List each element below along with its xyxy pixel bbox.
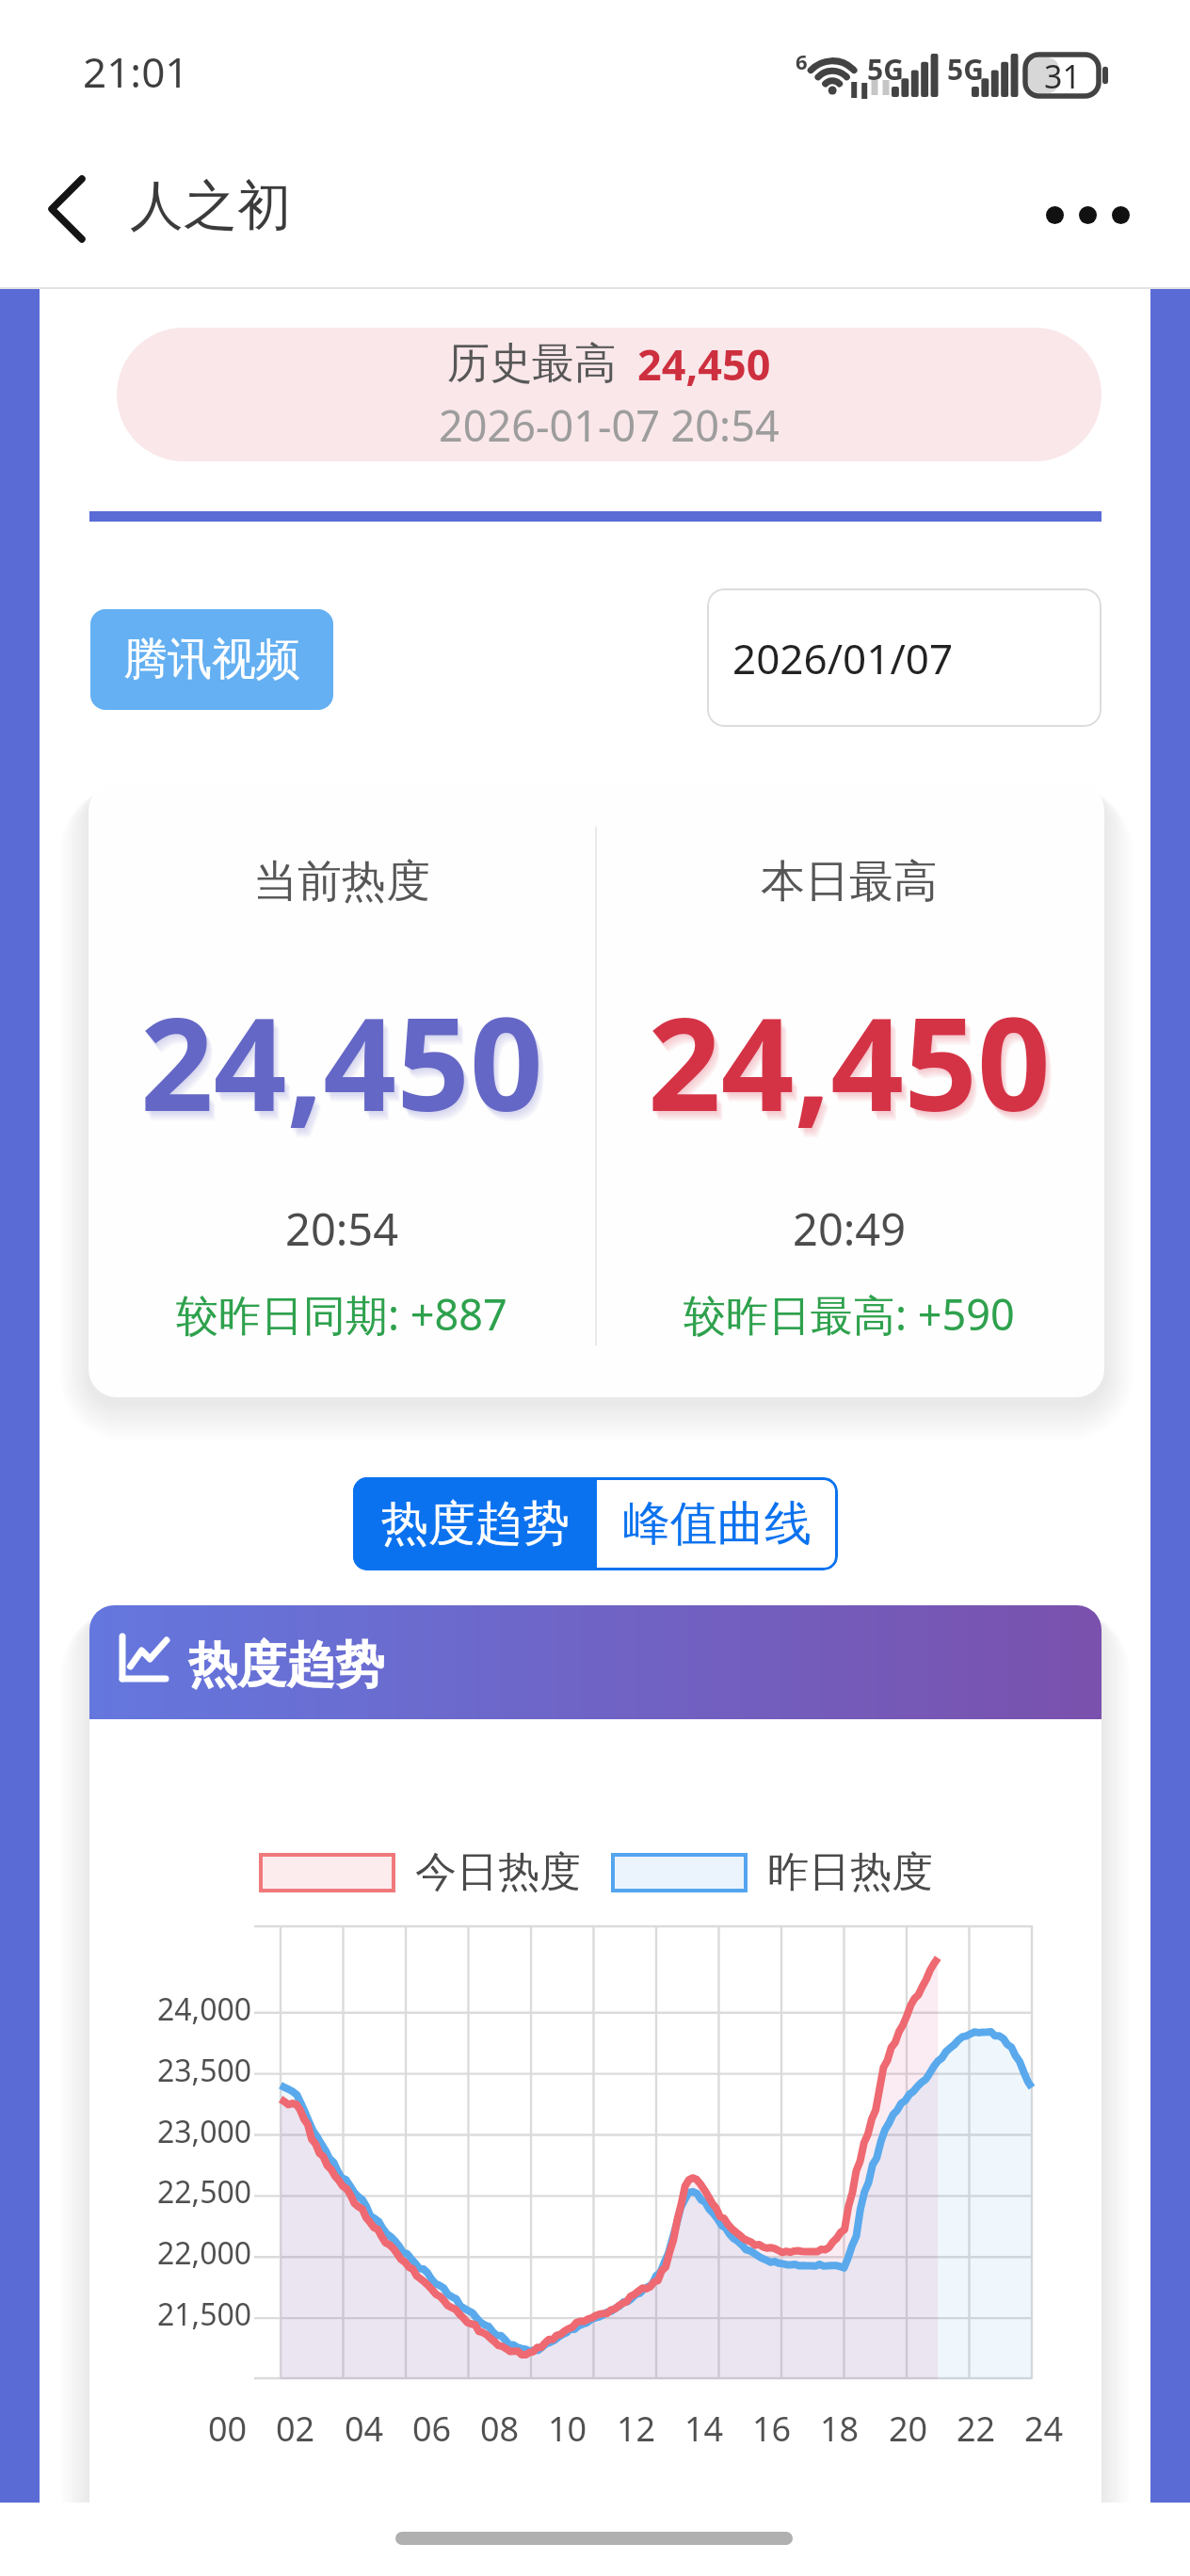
staticText: 23,500 (157, 2050, 252, 2091)
staticText: 06 (412, 2406, 452, 2452)
staticText: 较昨日同期: +887 (176, 1285, 507, 1343)
staticText: 24,450 (141, 976, 544, 1151)
staticText: 腾讯视频 (123, 632, 300, 687)
staticText: 24,450 (142, 978, 545, 1152)
staticText: 18 (820, 2406, 860, 2452)
staticText: 人之初 (130, 172, 291, 240)
staticText: 当前热度 (253, 854, 430, 910)
button[interactable]: Back (17, 159, 116, 258)
staticText: 2026-01-07 20:54 (439, 396, 780, 454)
staticText: 5G (867, 50, 904, 89)
staticText: 24,450 (649, 976, 1052, 1151)
staticText: 24,450 (650, 978, 1053, 1152)
staticText: 00 (208, 2406, 248, 2452)
staticText: 21:01 (83, 43, 189, 100)
staticText: 16 (752, 2406, 792, 2452)
button[interactable]: 峰值曲线 (597, 1477, 838, 1570)
button[interactable]: 腾讯视频 (90, 609, 333, 710)
staticText: 6 (796, 47, 808, 75)
staticText: 24,450 (637, 335, 771, 393)
staticText: 08 (480, 2406, 520, 2452)
staticText: 20:49 (793, 1199, 907, 1259)
staticText: 热度趋势 (188, 1634, 384, 1697)
staticText: 24,450 (653, 984, 1056, 1158)
staticText: 22,000 (157, 2232, 252, 2274)
staticText: 24,450 (652, 982, 1055, 1156)
staticText: 21,500 (157, 2294, 252, 2335)
staticText: 04 (345, 2406, 384, 2452)
staticText: 20:54 (285, 1199, 399, 1259)
staticText: 较昨日最高: +590 (683, 1285, 1015, 1343)
button[interactable]: 热度趋势 (353, 1477, 597, 1570)
staticText: 24,450 (648, 974, 1051, 1149)
staticText: 5G (947, 50, 984, 89)
staticText: 热度趋势 (381, 1494, 570, 1554)
staticText: 2026/01/07 (732, 630, 954, 686)
staticText: 24,450 (144, 980, 547, 1154)
staticText: 24,000 (157, 1988, 252, 2030)
staticText: 02 (276, 2406, 315, 2452)
staticText: 12 (617, 2406, 656, 2452)
button[interactable]: More options (1017, 168, 1158, 262)
staticText: 24,450 (146, 984, 549, 1158)
staticText: 历史最高 (447, 337, 617, 391)
staticText: 本日最高 (761, 854, 938, 910)
staticText: 峰值曲线 (623, 1494, 812, 1554)
staticText: 22,500 (157, 2171, 252, 2213)
staticText: 22 (957, 2406, 996, 2452)
staticText: 24,450 (140, 974, 543, 1149)
button[interactable]: 历史最高 (117, 328, 1102, 461)
staticText: 14 (684, 2406, 724, 2452)
staticText: 24,450 (651, 980, 1054, 1154)
staticText: 24,450 (145, 982, 548, 1156)
staticText: 20 (889, 2406, 928, 2452)
button[interactable]: 2026/01/07 (707, 588, 1102, 727)
staticText: 24 (1024, 2406, 1064, 2452)
staticText: 10 (548, 2406, 587, 2452)
staticText: 31 (1044, 55, 1081, 96)
staticText: 昨日热度 (767, 1846, 933, 1898)
staticText: 今日热度 (415, 1846, 581, 1898)
staticText: 23,000 (157, 2111, 252, 2152)
